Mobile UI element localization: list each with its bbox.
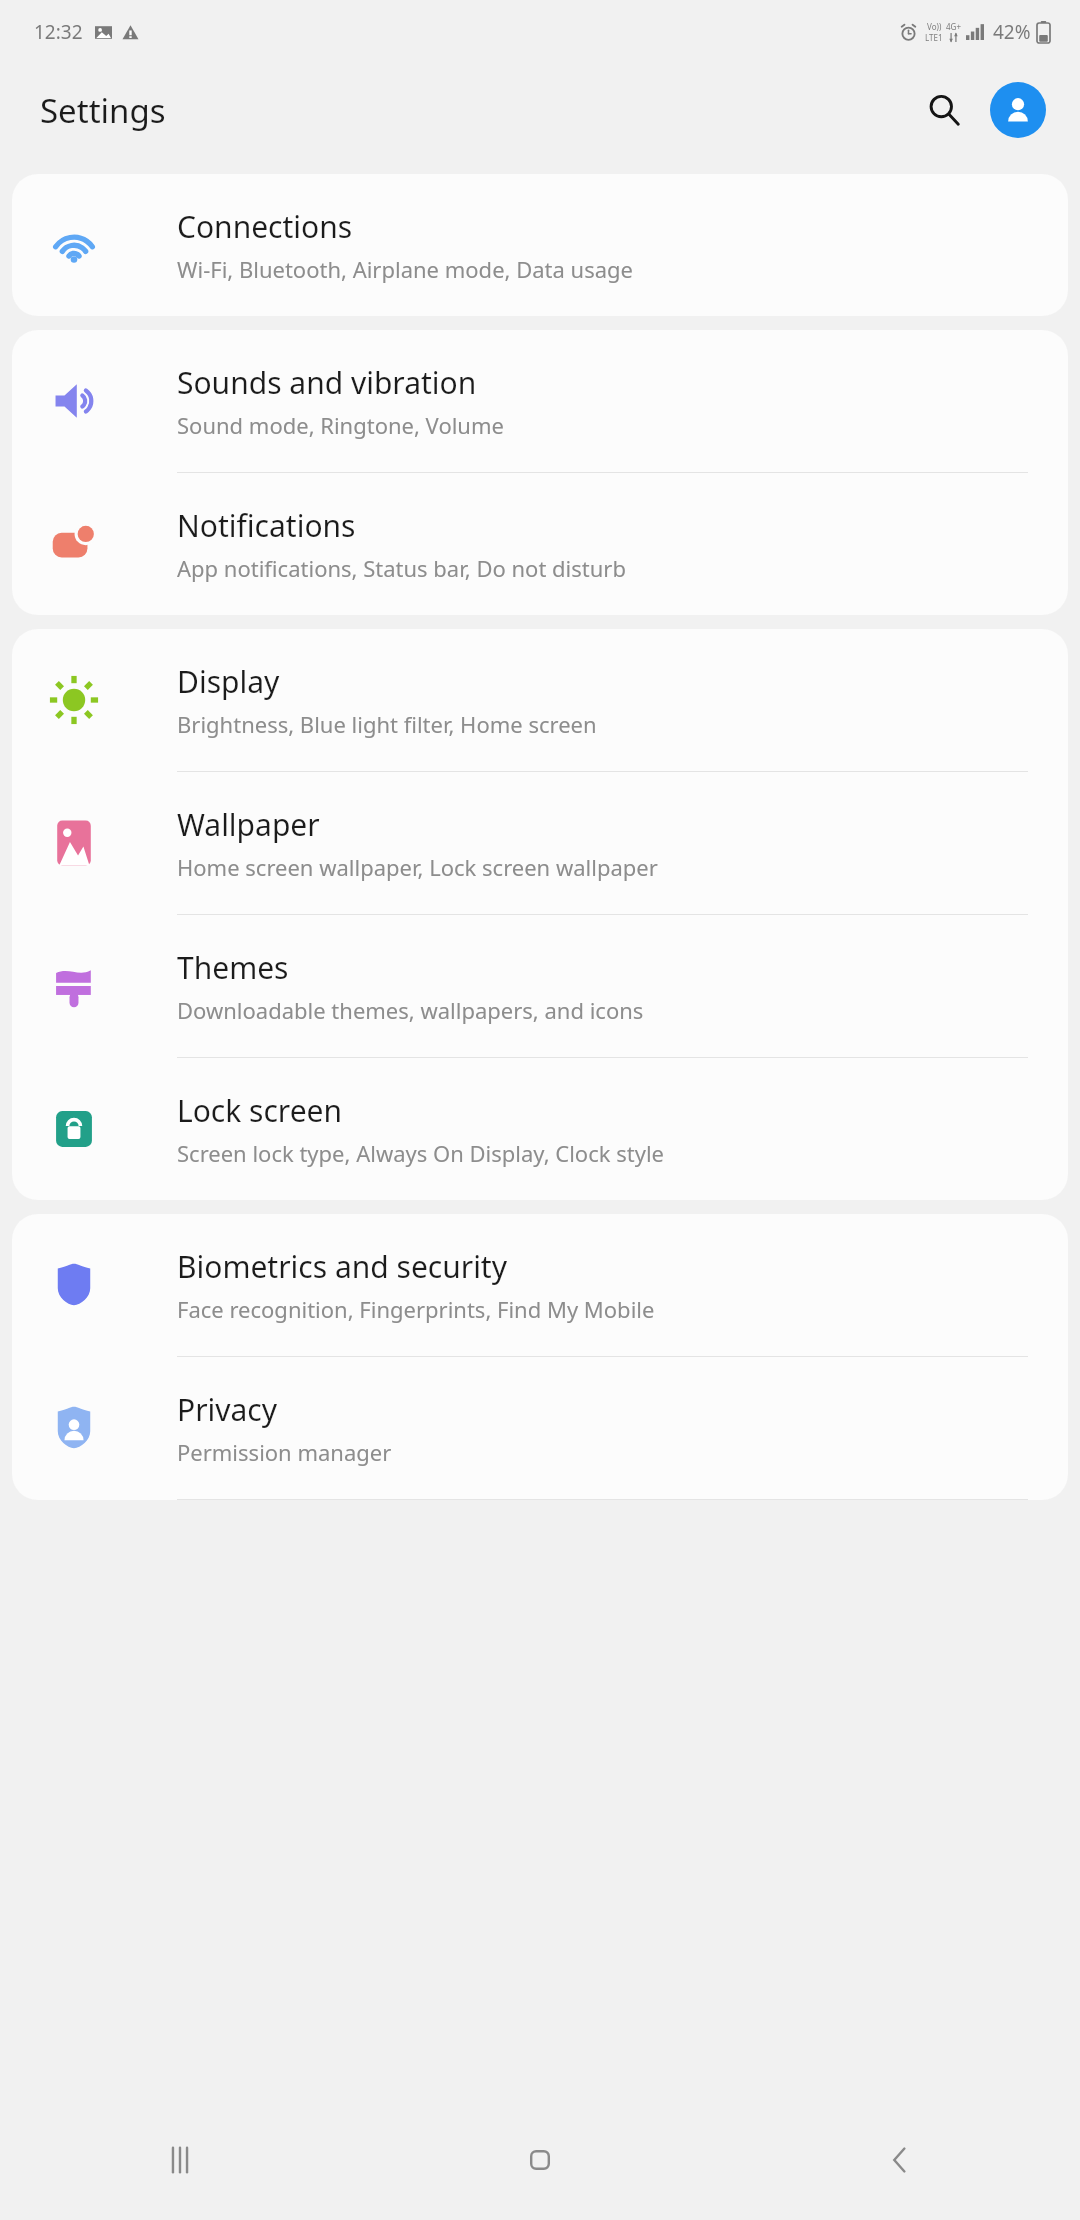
staticText: 42% (993, 19, 1031, 45)
staticText: Themes (177, 947, 289, 988)
staticText: 4G+ (946, 21, 961, 32)
button[interactable]: Connections (12, 174, 1068, 316)
staticText: Wi-Fi, Bluetooth, Airplane mode, Data us… (177, 254, 633, 284)
staticText: Privacy (177, 1389, 278, 1430)
button[interactable]: Privacy (12, 1357, 1068, 1499)
button[interactable]: Lock screen (12, 1058, 1068, 1200)
staticText: Permission manager (177, 1437, 392, 1467)
button[interactable]: Home (360, 2100, 720, 2220)
staticText: Downloadable themes, wallpapers, and ico… (177, 995, 644, 1025)
button[interactable]: Back (720, 2100, 1080, 2220)
button[interactable]: Recents (0, 2100, 360, 2220)
staticText: Settings (40, 88, 166, 133)
staticText: Notifications (177, 505, 356, 546)
staticText: Brightness, Blue light filter, Home scre… (177, 709, 597, 739)
button[interactable]: Wallpaper (12, 772, 1068, 914)
button[interactable]: Account (990, 82, 1046, 138)
staticText: Wallpaper (177, 804, 320, 845)
staticText: LTE1 (925, 32, 943, 43)
staticText: Sound mode, Ringtone, Volume (177, 410, 504, 440)
staticText: Biometrics and security (177, 1246, 507, 1287)
staticText: Vo)) (927, 21, 942, 32)
button[interactable]: Display (12, 629, 1068, 771)
button[interactable]: Biometrics and security (12, 1214, 1068, 1356)
button[interactable]: Themes (12, 915, 1068, 1057)
button[interactable]: Notifications (12, 473, 1068, 615)
staticText: Screen lock type, Always On Display, Clo… (177, 1138, 664, 1168)
staticText: Lock screen (177, 1090, 343, 1131)
button[interactable]: Sounds and vibration (12, 330, 1068, 472)
staticText: Home screen wallpaper, Lock screen wallp… (177, 852, 658, 882)
staticText: App notifications, Status bar, Do not di… (177, 553, 626, 583)
button[interactable]: Search (916, 82, 972, 138)
staticText: Face recognition, Fingerprints, Find My … (177, 1294, 655, 1324)
staticText: Display (177, 661, 280, 702)
staticText: 12:32 (34, 19, 83, 45)
staticText: Sounds and vibration (177, 362, 477, 403)
staticText: Connections (177, 206, 353, 247)
